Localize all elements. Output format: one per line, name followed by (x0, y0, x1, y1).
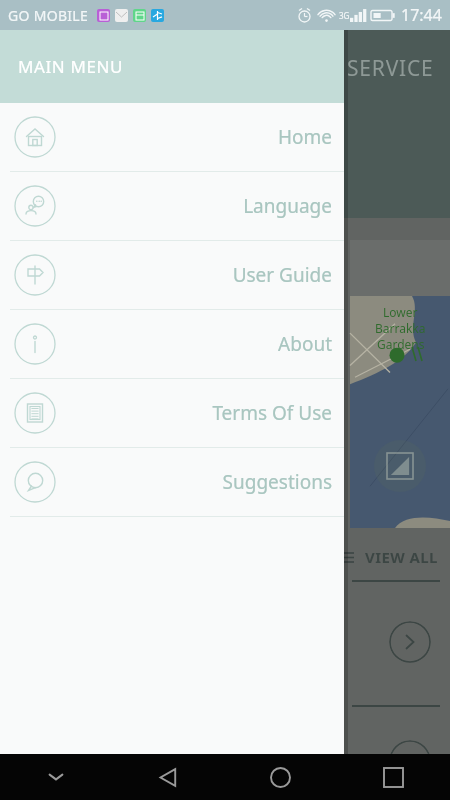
staticText: Terms Of Use (56, 400, 332, 426)
staticText: Gardens (377, 336, 425, 352)
staticText: About (56, 331, 332, 357)
staticText: User Guide (56, 262, 332, 288)
button[interactable]: Back (112, 754, 224, 800)
button[interactable]: Terms Of Use (0, 379, 344, 447)
button[interactable]: VIEW ALL (365, 547, 438, 567)
button[interactable]: Expand map (374, 440, 426, 492)
staticText: Language (56, 193, 332, 219)
button[interactable]: Language (0, 172, 344, 240)
button[interactable]: Recent apps (337, 754, 450, 800)
button[interactable]: Next item (389, 740, 431, 782)
staticText: VIEW ALL (365, 547, 438, 567)
staticText: GO MOBILE (8, 6, 89, 25)
staticText: Suggestions (56, 469, 332, 495)
staticText: SERVICE (347, 54, 434, 83)
button[interactable]: Suggestions (0, 448, 344, 516)
button[interactable]: Home (0, 103, 344, 171)
button[interactable]: Hide (0, 754, 112, 800)
button[interactable]: About (0, 310, 344, 378)
staticText: Lower (383, 304, 418, 320)
staticText: Home (56, 124, 332, 150)
staticText: Barrakka (375, 320, 426, 336)
button[interactable]: Next (389, 621, 431, 663)
staticText: MAIN MENU (18, 55, 124, 78)
button[interactable]: User Guide (0, 241, 344, 309)
staticText: 17:44 (401, 4, 442, 26)
button[interactable]: Home (224, 754, 337, 800)
staticText: 3G (339, 10, 350, 21)
